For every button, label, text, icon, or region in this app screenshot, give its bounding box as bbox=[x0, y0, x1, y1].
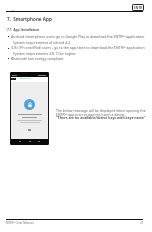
button[interactable]: ENTR bbox=[132, 4, 144, 11]
staticText: System requirements of ndroid 4.4 bbox=[13, 40, 70, 45]
staticText: Bluetooth low energy compliant bbox=[11, 56, 64, 61]
staticText: ENTR™ User Manual bbox=[6, 221, 34, 225]
staticText: ENTR™ app prior to pairing it with a dev… bbox=[56, 112, 126, 117]
staticText: Android smartphone users go to Google Pl… bbox=[11, 34, 146, 39]
staticText: ENTR™ bbox=[6, 9, 14, 12]
staticText: iOS ( iPh one/iPad) users - go to the ap… bbox=[11, 45, 146, 50]
staticText: The below message will be displayed when… bbox=[56, 108, 146, 113]
staticText: System requirements iOS 7.0or higher. bbox=[13, 51, 77, 56]
staticText: "There are no available/active keys with… bbox=[56, 115, 146, 120]
staticText: 37 bbox=[140, 221, 144, 225]
staticText: 7. Smartphone App bbox=[7, 16, 52, 22]
button[interactable] bbox=[28, 129, 31, 131]
staticText: ENTR bbox=[134, 6, 143, 10]
staticText: 7.1 App Installation bbox=[7, 28, 40, 32]
